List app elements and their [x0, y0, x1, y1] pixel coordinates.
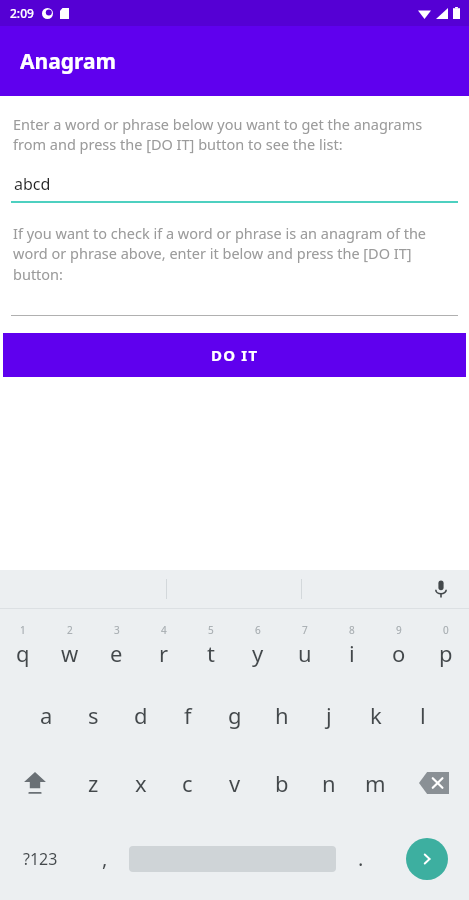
staticText: 9 — [396, 623, 402, 637]
button[interactable]: j — [305, 681, 352, 749]
staticText: 2:09 — [10, 5, 34, 21]
button[interactable]: f — [164, 681, 211, 749]
staticText: d — [134, 700, 148, 730]
staticText: n — [322, 768, 336, 798]
button[interactable]: 4 — [140, 609, 187, 681]
button[interactable]: Shift — [0, 749, 70, 817]
staticText: 0 — [443, 623, 449, 637]
staticText: u — [298, 638, 312, 668]
button[interactable]: abcd — [11, 173, 458, 203]
staticText: 3 — [114, 623, 120, 637]
button[interactable]: ?123 — [0, 817, 80, 900]
staticText: 5 — [208, 623, 214, 637]
staticText: . — [358, 845, 364, 872]
staticText: g — [228, 700, 242, 730]
button[interactable]: a — [23, 681, 70, 749]
staticText: m — [365, 768, 386, 798]
staticText: p — [439, 638, 453, 668]
button[interactable]: l — [399, 681, 446, 749]
button[interactable]: s — [70, 681, 117, 749]
button[interactable]: 5 — [187, 609, 234, 681]
button[interactable]: 9 — [375, 609, 422, 681]
staticText: o — [392, 638, 406, 668]
staticText: c — [182, 768, 193, 798]
staticText: 7 — [302, 623, 308, 637]
staticText: v — [229, 768, 241, 798]
staticText: e — [110, 638, 123, 668]
staticText: k — [370, 700, 382, 730]
button[interactable]: c — [164, 749, 211, 817]
staticText: t — [207, 638, 215, 668]
button[interactable]: 8 — [328, 609, 375, 681]
button[interactable]: 3 — [93, 609, 140, 681]
button[interactable]: DO IT — [3, 333, 466, 377]
staticText: x — [135, 768, 147, 798]
staticText: f — [184, 700, 192, 730]
button[interactable]: v — [211, 749, 258, 817]
staticText: ?123 — [23, 848, 58, 870]
staticText: z — [88, 768, 99, 798]
button[interactable]: Enter — [406, 838, 448, 880]
staticText: 6 — [255, 623, 261, 637]
staticText: y — [252, 638, 264, 668]
button[interactable]: n — [305, 749, 352, 817]
staticText: DO IT — [211, 345, 259, 365]
button[interactable]: m — [352, 749, 399, 817]
staticText: Anagram — [20, 47, 117, 76]
staticText: Enter a word or phrase below you want to… — [13, 114, 456, 155]
button[interactable]: z — [70, 749, 117, 817]
staticText: h — [275, 700, 289, 730]
button[interactable]: 2 — [46, 609, 93, 681]
staticText: abcd — [14, 173, 51, 195]
staticText: 1 — [20, 623, 26, 637]
staticText: 8 — [349, 623, 355, 637]
staticText: r — [159, 638, 169, 668]
button[interactable]: . — [336, 817, 385, 900]
staticText: s — [88, 700, 99, 730]
staticText: b — [275, 768, 289, 798]
button[interactable]: d — [117, 681, 164, 749]
button[interactable]: 1 — [0, 609, 46, 681]
button[interactable]: Backspace — [399, 749, 469, 817]
staticText: l — [420, 700, 426, 730]
staticText: j — [326, 700, 332, 730]
button[interactable]: , — [80, 817, 129, 900]
button[interactable]: Voice input — [427, 575, 455, 603]
staticText: q — [16, 638, 30, 668]
button[interactable]: h — [258, 681, 305, 749]
staticText: If you want to check if a word or phrase… — [13, 223, 456, 285]
staticText: w — [61, 638, 79, 668]
staticText: 4 — [161, 623, 167, 637]
staticText: a — [40, 700, 53, 730]
button[interactable]: 6 — [234, 609, 281, 681]
staticText: i — [349, 638, 355, 668]
button[interactable]: 0 — [422, 609, 469, 681]
button[interactable]: k — [352, 681, 399, 749]
button[interactable]: b — [258, 749, 305, 817]
staticText: 2 — [67, 623, 73, 637]
button[interactable]: g — [211, 681, 258, 749]
button[interactable]: x — [117, 749, 164, 817]
button[interactable]: 7 — [281, 609, 328, 681]
staticText: , — [102, 845, 108, 872]
